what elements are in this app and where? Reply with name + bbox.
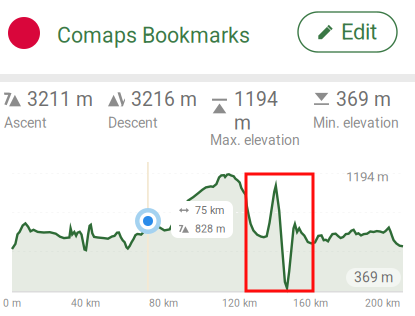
staticText: 3216 m: [131, 88, 197, 111]
staticText: 40 km: [71, 297, 100, 309]
staticText: 3211 m: [27, 88, 93, 111]
staticText: Ascent: [4, 115, 47, 131]
staticText: Min. elevation: [313, 115, 399, 131]
staticText: m: [234, 112, 251, 134]
staticText: 160 km: [293, 297, 328, 309]
staticText: Comaps Bookmarks: [57, 23, 250, 48]
staticText: 1194: [234, 88, 278, 111]
staticText: 75 km: [195, 204, 224, 216]
staticText: 828 m: [195, 222, 225, 235]
staticText: Max. elevation: [210, 132, 300, 148]
staticText: 369 m: [354, 269, 393, 286]
staticText: Descent: [108, 115, 158, 131]
staticText: 80 km: [149, 297, 178, 309]
staticText: Edit: [341, 19, 377, 45]
staticText: 0 m: [3, 297, 21, 309]
staticText: 120 km: [222, 297, 257, 309]
staticText: 369 m: [336, 88, 391, 111]
staticText: 1194 m: [346, 169, 389, 185]
button[interactable]: Edit: [298, 12, 397, 52]
staticText: 200 km: [365, 297, 400, 309]
